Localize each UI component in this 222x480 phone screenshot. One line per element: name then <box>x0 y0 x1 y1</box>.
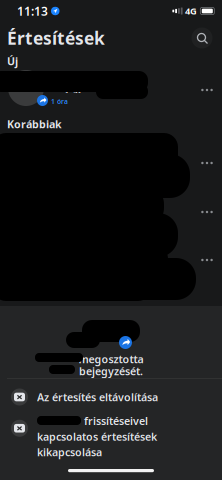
staticText: Az értesítés eltávolítása <box>37 390 158 404</box>
button[interactable]: More options <box>196 253 218 267</box>
staticText: Értesítések <box>7 26 105 49</box>
staticText: t bejegyzését. <box>51 83 105 94</box>
button[interactable]: frissítéseivel <box>0 411 222 459</box>
staticText: Korábbiak <box>7 117 62 131</box>
button[interactable]: megosztotta <box>0 68 222 110</box>
button[interactable]: More options <box>196 156 218 170</box>
button[interactable]: More options <box>196 205 218 219</box>
staticText: 4G <box>185 5 197 17</box>
staticText: kapcsolatos értesítések <box>37 429 157 444</box>
staticText: bejegyzését. <box>79 364 143 378</box>
staticText: frissítéseivel <box>81 414 148 428</box>
staticText: Új <box>7 54 18 68</box>
staticText: 1 óra <box>51 97 68 106</box>
staticText: kikapcsolása <box>37 445 102 459</box>
button[interactable]: Search <box>190 26 214 50</box>
staticText: megosztotta <box>78 352 143 366</box>
button[interactable]: Az értesítés eltávolítása <box>0 383 222 411</box>
staticText: 11:13 <box>17 3 48 19</box>
